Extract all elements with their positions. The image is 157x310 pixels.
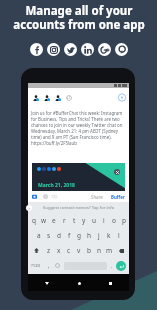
staticText: m: [106, 246, 113, 255]
staticText: k: [107, 231, 111, 240]
staticText: y: [82, 216, 86, 225]
button[interactable]: Facebook: [30, 43, 43, 56]
button[interactable]: i: [99, 213, 109, 228]
staticText: Join us for #BufferChat this week: Insta…: [31, 110, 125, 146]
button[interactable]: Enter: [116, 261, 126, 271]
button[interactable]: w: [39, 213, 49, 228]
button[interactable]: m: [104, 243, 114, 258]
button[interactable]: LinkedIn: [81, 43, 94, 56]
button[interactable]: c: [64, 243, 74, 258]
staticText: March 21, 2018: [38, 182, 75, 189]
staticText: c: [67, 246, 71, 255]
button[interactable]: f: [64, 228, 74, 243]
button[interactable]: Pinterest: [115, 43, 128, 56]
staticText: q: [32, 216, 36, 225]
button[interactable]: Emoji: [43, 194, 48, 199]
staticText: Manage all of your accounts from one app: [13, 3, 145, 32]
button[interactable]: Home: [76, 280, 82, 286]
button[interactable]: d: [54, 228, 64, 243]
staticText: s: [47, 231, 51, 240]
staticText: e: [52, 216, 56, 225]
button[interactable]: t: [69, 213, 79, 228]
button[interactable]: s: [44, 228, 54, 243]
button[interactable]: Buffer: [111, 194, 125, 200]
staticText: u: [92, 216, 97, 225]
staticText: ?123: [31, 263, 41, 269]
button[interactable]: Shift: [29, 243, 44, 258]
button[interactable]: h: [84, 228, 94, 243]
button[interactable]: y: [79, 213, 89, 228]
button[interactable]: a: [34, 228, 44, 243]
staticText: d: [57, 231, 61, 240]
button[interactable]: b: [84, 243, 94, 258]
button[interactable]: x: [54, 243, 64, 258]
button[interactable]: Add photo: [32, 194, 37, 199]
button[interactable]: Recents: [107, 280, 113, 286]
button[interactable]: Share: [91, 194, 103, 200]
button[interactable]: Instagram: [47, 43, 60, 56]
staticText: .: [111, 262, 113, 269]
staticText: p: [122, 216, 126, 225]
button[interactable]: g: [74, 228, 84, 243]
staticText: b: [87, 246, 91, 255]
staticText: h: [87, 231, 92, 240]
staticText: l: [118, 231, 120, 240]
button[interactable]: r: [59, 213, 69, 228]
button[interactable]: q: [29, 213, 39, 228]
button[interactable]: e: [49, 213, 59, 228]
button[interactable]: Twitter: [64, 43, 77, 56]
button[interactable]: l: [114, 228, 124, 243]
button[interactable]: k: [104, 228, 114, 243]
button[interactable]: Emoji: [55, 263, 60, 268]
staticText: a: [37, 231, 41, 240]
button[interactable]: ?123: [31, 263, 41, 269]
button[interactable]: Backspace: [114, 243, 129, 258]
staticText: w: [41, 216, 47, 225]
button[interactable]: Link: [52, 195, 57, 198]
button[interactable]: u: [89, 213, 99, 228]
staticText: n: [97, 246, 102, 255]
button[interactable]: Remove image: [114, 169, 120, 175]
button[interactable]: More: [26, 205, 32, 211]
button[interactable]: v: [74, 243, 84, 258]
staticText: o: [112, 216, 116, 225]
staticText: z: [47, 246, 51, 255]
staticText: Suggest contact names? Tap for info: [43, 205, 115, 211]
staticText: g: [77, 231, 81, 240]
button[interactable]: p: [119, 213, 129, 228]
staticText: ,: [48, 262, 50, 269]
button[interactable]: o: [109, 213, 119, 228]
staticText: >: [28, 206, 31, 211]
staticText: t: [73, 216, 76, 225]
staticText: +1: [67, 96, 71, 100]
button[interactable]: Back: [44, 280, 50, 286]
staticText: v: [77, 246, 81, 255]
button[interactable]: Google Plus: [98, 43, 111, 56]
staticText: i: [103, 216, 105, 225]
button[interactable]: n: [94, 243, 104, 258]
staticText: j: [98, 231, 100, 240]
button[interactable]: j: [94, 228, 104, 243]
button[interactable]: z: [44, 243, 54, 258]
staticText: r: [63, 216, 66, 225]
staticText: x: [57, 246, 61, 255]
staticText: f: [68, 231, 71, 240]
